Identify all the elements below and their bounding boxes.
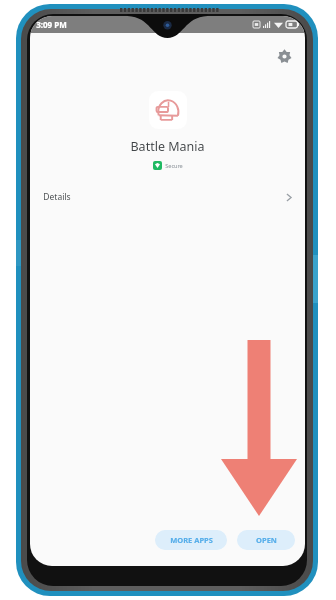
staticText: Details — [43, 191, 71, 203]
staticText: 3:09 PM — [36, 19, 67, 30]
button[interactable]: Settings — [269, 41, 299, 71]
button[interactable]: MORE APPS — [155, 530, 227, 550]
staticText: MORE APPS — [170, 535, 213, 545]
button[interactable]: OPEN — [237, 530, 295, 550]
staticText: Battle Mania — [130, 138, 205, 155]
staticText: OPEN — [256, 535, 277, 545]
button[interactable]: Details — [30, 184, 305, 210]
staticText: Secure — [165, 162, 183, 169]
